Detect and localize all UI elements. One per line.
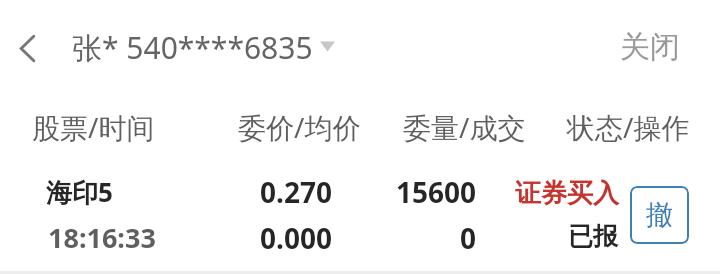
button[interactable]: 张* 540****6835	[72, 27, 335, 68]
staticText: 15600	[356, 173, 476, 211]
staticText: 关闭	[620, 28, 680, 66]
staticText: 委量/成交	[403, 108, 526, 146]
button[interactable]: 海印5	[0, 160, 720, 270]
staticText: 0.270	[212, 173, 332, 211]
button[interactable]: 撤	[630, 186, 689, 244]
staticText: 委价/均价	[238, 108, 361, 146]
staticText: 0	[356, 219, 476, 257]
staticText: 张* 540****6835	[72, 27, 313, 68]
staticText: 证券买入	[515, 177, 619, 210]
button[interactable]: Back	[4, 26, 46, 68]
staticText: 状态/操作	[567, 108, 690, 146]
staticText: 18:16:33	[48, 219, 156, 256]
staticText: 股票/时间	[32, 108, 155, 146]
staticText: 0.000	[212, 219, 332, 257]
staticText: 撤	[646, 198, 673, 232]
button[interactable]: 关闭	[620, 28, 680, 66]
staticText: 海印5	[46, 174, 113, 210]
staticText: 已报	[568, 221, 618, 252]
